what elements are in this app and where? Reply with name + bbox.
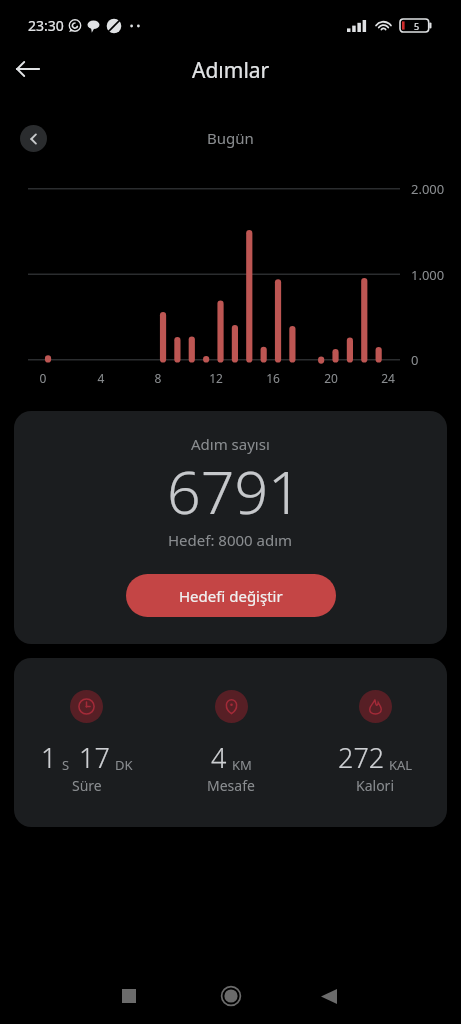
- staticText: 20: [316, 370, 346, 386]
- button[interactable]: Recents: [107, 974, 151, 1018]
- staticText: Kalori: [356, 776, 394, 795]
- staticText: KAL: [389, 756, 413, 774]
- staticText: 24: [373, 370, 403, 386]
- staticText: 1: [41, 739, 57, 776]
- staticText: 0: [28, 370, 58, 386]
- staticText: S: [62, 756, 70, 774]
- staticText: Adımlar: [192, 56, 270, 85]
- staticText: DK: [115, 756, 133, 774]
- button[interactable]: Süre: [70, 690, 103, 723]
- button[interactable]: Back: [9, 50, 47, 88]
- button[interactable]: Mesafe: [215, 690, 248, 723]
- staticText: 16: [258, 370, 288, 386]
- button[interactable]: Hedefi değiştir: [126, 574, 336, 617]
- staticText: Hedefi değiştir: [179, 586, 283, 606]
- button[interactable]: Kalori: [359, 690, 392, 723]
- staticText: 5: [414, 20, 420, 32]
- button[interactable]: Previous day: [20, 125, 47, 152]
- staticText: 1.000: [411, 266, 445, 284]
- staticText: 2.000: [411, 180, 445, 198]
- button[interactable]: Back: [307, 974, 351, 1018]
- staticText: Süre: [72, 776, 102, 795]
- staticText: 4: [86, 370, 116, 386]
- button[interactable]: Adım sayısı: [14, 411, 447, 644]
- staticText: 23:30: [28, 16, 64, 35]
- staticText: Mesafe: [207, 776, 255, 795]
- staticText: 8: [143, 370, 173, 386]
- staticText: Adım sayısı: [191, 434, 270, 454]
- staticText: 17: [79, 739, 110, 776]
- staticText: KM: [232, 756, 252, 774]
- staticText: 272: [338, 739, 385, 776]
- staticText: 4: [211, 739, 227, 776]
- staticText: Hedef: 8000 adım: [168, 530, 293, 550]
- staticText: 12: [201, 370, 231, 386]
- staticText: Bugün: [207, 128, 254, 148]
- button[interactable]: Home: [209, 974, 253, 1018]
- staticText: 0: [411, 351, 419, 369]
- staticText: 6791: [167, 451, 302, 531]
